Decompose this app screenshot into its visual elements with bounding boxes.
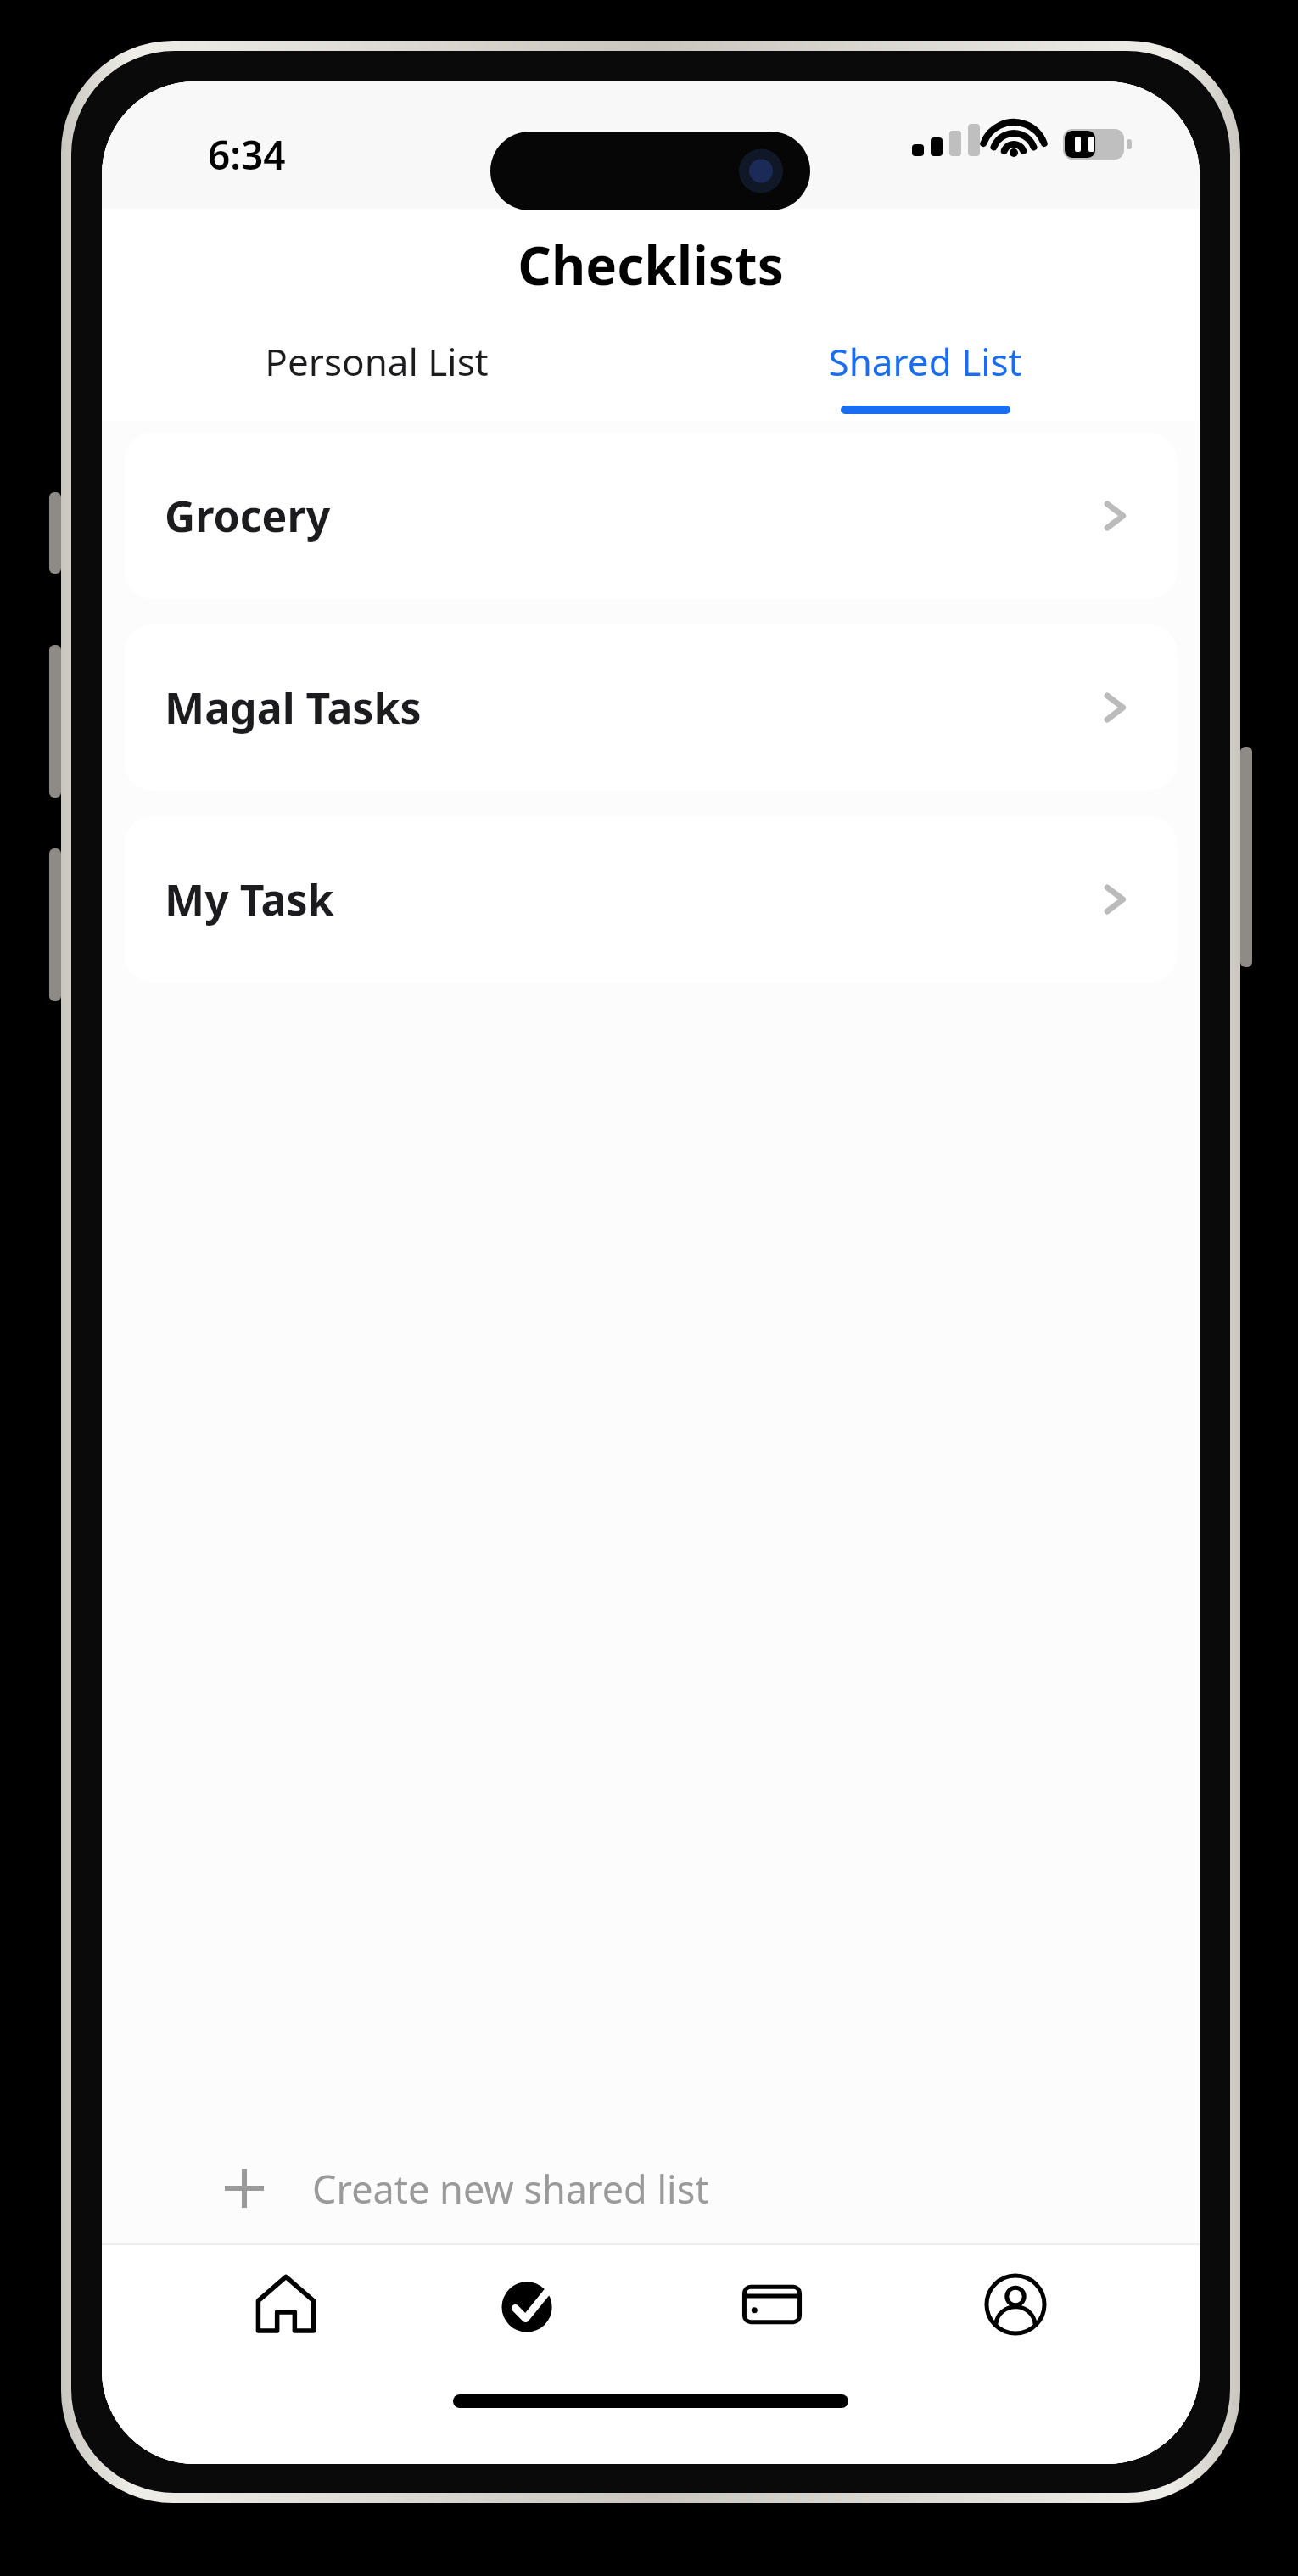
button[interactable]: Wallet	[713, 2245, 831, 2364]
button[interactable]: Shared List	[651, 321, 1200, 421]
staticText: Grocery	[165, 487, 331, 545]
staticText: Personal List	[265, 336, 489, 387]
button[interactable]: Checklists	[470, 2245, 589, 2364]
button[interactable]: Personal List	[102, 321, 651, 421]
staticText: Checklists	[518, 229, 784, 300]
staticText: Create new shared list	[312, 2163, 709, 2215]
staticText: Magal Tasks	[165, 679, 422, 736]
button[interactable]: Profile	[956, 2245, 1075, 2364]
button[interactable]: Create new shared list	[102, 2133, 1200, 2243]
button[interactable]: My Task	[124, 816, 1178, 983]
button[interactable]: Grocery	[124, 433, 1178, 599]
staticText: Shared List	[828, 336, 1022, 387]
button[interactable]: Magal Tasks	[124, 624, 1178, 791]
button[interactable]: Home	[227, 2245, 345, 2364]
staticText: 6:34	[208, 128, 286, 182]
staticText: My Task	[165, 871, 334, 928]
